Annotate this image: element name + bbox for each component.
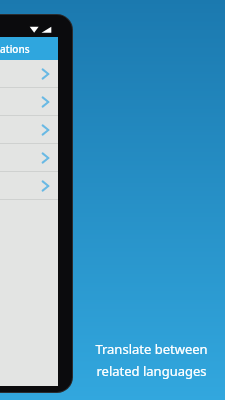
button[interactable]: Adaptation item <box>0 60 58 88</box>
button[interactable]: Active Adaptations <box>0 37 58 60</box>
button[interactable]: Adaptation item <box>0 88 58 116</box>
staticText: Active Adaptations <box>0 42 30 56</box>
button[interactable]: Adaptation item <box>0 144 58 172</box>
staticText: related languages <box>96 362 207 380</box>
staticText: Translate between <box>95 340 208 358</box>
button[interactable]: Adaptation item <box>0 116 58 144</box>
button[interactable]: Adaptation item <box>0 172 58 200</box>
